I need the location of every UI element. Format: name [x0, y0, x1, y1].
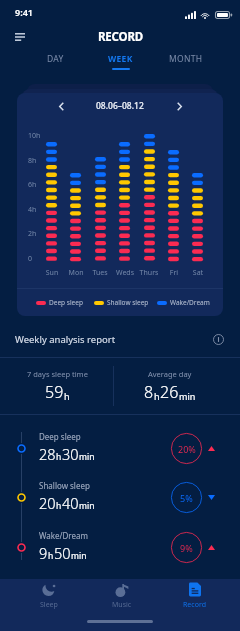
staticText: Wake/Dream: [39, 530, 88, 541]
staticText: 20: [39, 493, 56, 513]
staticText: DAY: [47, 53, 64, 65]
staticText: Deep sleep: [39, 431, 81, 442]
staticText: 9:41: [15, 6, 33, 18]
staticText: Deep sleep: [49, 298, 83, 307]
staticText: h: [48, 550, 54, 562]
staticText: 9%: [180, 542, 193, 554]
staticText: min: [179, 390, 196, 402]
staticText: h: [64, 390, 70, 402]
staticText: 7 days sleep time: [27, 369, 88, 379]
button[interactable]: Music: [85, 579, 158, 612]
staticText: 30: [62, 444, 79, 464]
staticText: 8h: [28, 156, 37, 166]
staticText: h: [56, 451, 62, 463]
staticText: 4h: [28, 205, 37, 215]
button[interactable]: WEEK: [88, 50, 153, 72]
staticText: Sun: [40, 268, 64, 278]
button[interactable]: 7 days sleep time: [0, 358, 114, 414]
button[interactable]: DAY: [22, 50, 88, 72]
button[interactable]: Deep sleep: [0, 426, 240, 470]
staticText: 08.06–08.12: [96, 100, 144, 112]
staticText: h: [154, 390, 160, 402]
staticText: 5%: [180, 492, 193, 504]
staticText: 8: [144, 381, 154, 403]
button[interactable]: Wake/Dream: [0, 525, 240, 569]
button[interactable]: Next week: [170, 97, 188, 115]
staticText: min: [79, 451, 95, 463]
staticText: MONTH: [169, 53, 203, 65]
button[interactable]: Record: [158, 579, 231, 612]
button[interactable]: Sleep: [12, 579, 85, 612]
staticText: 40: [62, 493, 79, 513]
staticText: Thurs: [137, 268, 161, 278]
staticText: 9: [39, 543, 48, 563]
staticText: Weds: [113, 268, 137, 278]
staticText: 20%: [178, 443, 196, 455]
staticText: 50: [54, 543, 71, 563]
staticText: 0: [28, 254, 33, 264]
button[interactable]: MONTH: [153, 50, 218, 72]
staticText: Music: [112, 600, 132, 610]
staticText: min: [71, 550, 87, 562]
staticText: Mon: [64, 268, 88, 278]
staticText: 10h: [28, 131, 41, 141]
button[interactable]: Menu: [9, 26, 31, 48]
staticText: Shallow sleep: [39, 480, 90, 491]
staticText: WEEK: [108, 53, 133, 65]
staticText: Sleep: [40, 600, 58, 610]
staticText: 26: [160, 381, 179, 403]
button[interactable]: Shallow sleep: [0, 475, 240, 519]
staticText: Tues: [88, 268, 112, 278]
staticText: Record: [183, 600, 206, 610]
staticText: Weekly analysis report: [15, 333, 116, 346]
staticText: Wake/Dream: [170, 298, 210, 307]
staticText: 2h: [28, 229, 37, 239]
button[interactable]: Average day: [114, 358, 226, 414]
staticText: 59: [45, 381, 64, 403]
staticText: Average day: [148, 369, 192, 379]
staticText: 6h: [28, 180, 37, 190]
staticText: Fri: [162, 268, 186, 278]
button[interactable]: Previous week: [52, 97, 70, 115]
staticText: RECORD: [98, 29, 143, 45]
staticText: min: [79, 500, 95, 512]
staticText: h: [56, 500, 62, 512]
button[interactable]: Info: [209, 330, 227, 348]
staticText: 28: [39, 444, 56, 464]
staticText: Shallow sleep: [107, 298, 149, 307]
staticText: Sat: [186, 268, 210, 278]
